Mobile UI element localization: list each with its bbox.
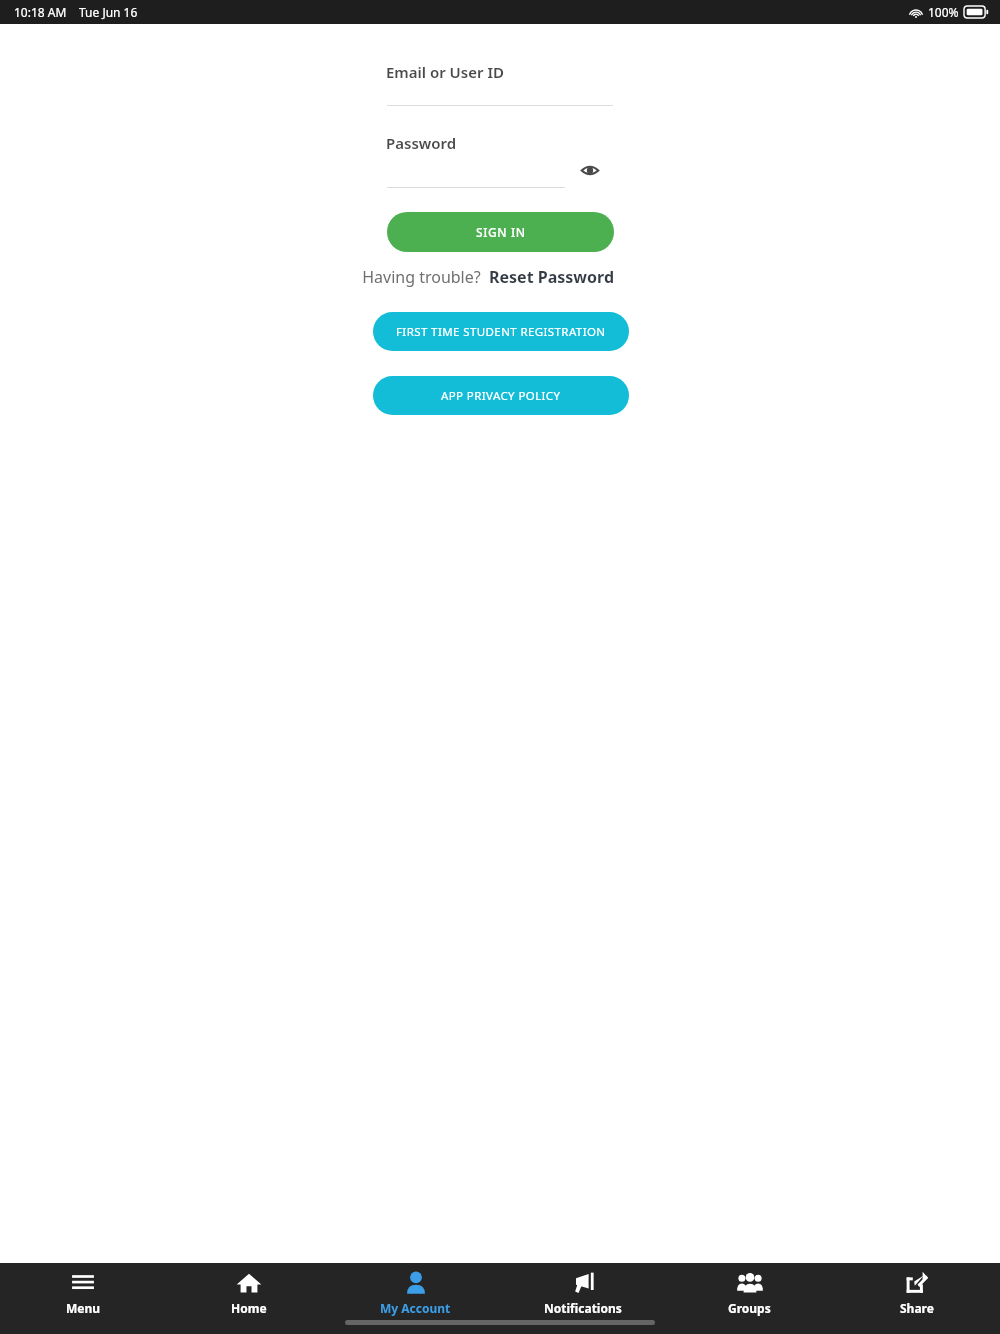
staticText: Menu	[66, 1300, 101, 1316]
staticText: SIGN IN	[476, 224, 526, 240]
staticText: 100%	[928, 4, 959, 20]
staticText: Notifications	[544, 1300, 622, 1316]
button[interactable]: My Account	[332, 1263, 499, 1321]
button[interactable]: Show password	[575, 158, 605, 183]
staticText: Groups	[728, 1300, 771, 1316]
staticText: Email or User ID	[386, 62, 504, 82]
button[interactable]: Groups	[666, 1263, 833, 1321]
button[interactable]: SIGN IN	[387, 212, 614, 252]
staticText: Share	[900, 1300, 934, 1316]
button[interactable]: APP PRIVACY POLICY	[373, 376, 629, 415]
button[interactable]: Menu	[0, 1263, 166, 1321]
staticText: FIRST TIME STUDENT REGISTRATION	[396, 324, 606, 340]
staticText: My Account	[380, 1300, 451, 1316]
button[interactable]: Home	[166, 1263, 332, 1321]
staticText: Tue Jun 16	[79, 4, 138, 20]
staticText: 10:18 AM	[14, 4, 67, 20]
button[interactable]: Notifications	[499, 1263, 666, 1321]
button[interactable]: FIRST TIME STUDENT REGISTRATION	[373, 312, 629, 351]
staticText: Password	[386, 133, 457, 153]
button[interactable]: Having trouble? Reset Password	[0, 266, 614, 288]
staticText: Home	[231, 1300, 267, 1316]
button[interactable]: Share	[833, 1263, 1000, 1321]
staticText: APP PRIVACY POLICY	[441, 388, 561, 404]
